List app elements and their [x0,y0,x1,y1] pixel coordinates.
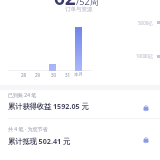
button[interactable] [0,119,160,149]
staticText: 共 4 笔 · 为您节省 [8,126,48,133]
staticText: 5000亿 [138,20,153,26]
staticText: 31 [65,72,71,78]
other: View discount detail [143,137,149,143]
staticText: 已到账 24 笔 [8,92,37,99]
staticText: /52周 [76,0,99,7]
staticText: 累计抵现 502.41 元 [8,136,71,146]
staticText: 本月 [74,72,83,78]
staticText: 订单与资源 [65,6,93,13]
staticText: 62 [54,0,76,11]
staticText: 28 [21,72,27,78]
staticText: 累计获得收益 1592.05 元 [8,101,89,111]
staticText: 29 [35,72,41,78]
staticText: 10000亿 [136,53,154,59]
button[interactable] [0,89,160,118]
other: View earnings detail [143,105,149,111]
staticText: 30 [51,72,57,78]
